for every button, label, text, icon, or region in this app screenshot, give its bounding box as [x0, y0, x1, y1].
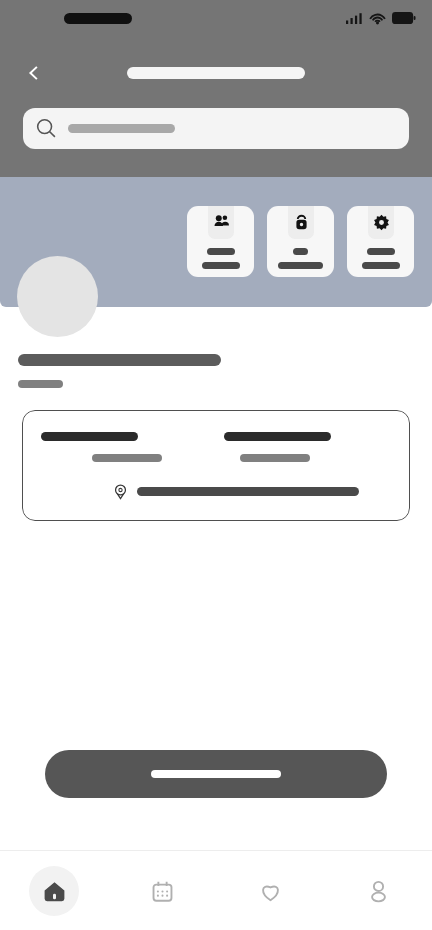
button[interactable]: Home [29, 866, 79, 916]
button[interactable] [23, 108, 409, 149]
button[interactable]: Badge [347, 206, 414, 277]
button[interactable]: Lock [267, 206, 334, 277]
button[interactable]: Calendar [140, 869, 184, 913]
button[interactable]: Back [18, 57, 50, 89]
button[interactable]: People [187, 206, 254, 277]
button[interactable]: Profile photo [17, 256, 98, 337]
button[interactable]: Favorites [248, 869, 292, 913]
button[interactable]: Profile [356, 869, 400, 913]
button[interactable] [22, 410, 410, 521]
button[interactable] [45, 750, 387, 798]
